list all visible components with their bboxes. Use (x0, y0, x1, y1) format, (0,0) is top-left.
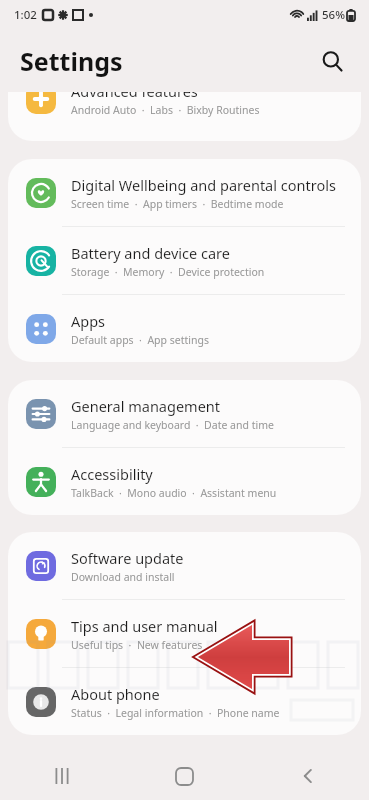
staticText: About phone (71, 684, 160, 704)
staticText: Download and install (71, 570, 175, 584)
button[interactable]: Search (315, 44, 349, 78)
staticText: Useful tips · New features (71, 638, 203, 652)
staticText: Advanced features (71, 92, 198, 101)
staticText: Default apps · App settings (71, 333, 209, 347)
staticText: 56% (322, 7, 345, 23)
staticText: Android Auto · Labs · Bixby Routines (71, 103, 260, 117)
staticText: Language and keyboard · Date and time (71, 418, 274, 432)
button[interactable]: Home (123, 752, 246, 800)
staticText: Software update (71, 548, 184, 568)
button[interactable]: Apps (8, 295, 361, 362)
staticText: Apps (71, 311, 106, 331)
staticText: TalkBack · Mono audio · Assistant menu (71, 486, 277, 500)
button[interactable]: Tips and user manual (8, 600, 361, 667)
button[interactable]: Recents (0, 752, 123, 800)
button[interactable]: General management (8, 380, 361, 447)
staticText: Battery and device care (71, 243, 230, 263)
button[interactable]: Software update (8, 532, 361, 599)
staticText: Accessibility (71, 464, 153, 484)
staticText: Tips and user manual (71, 616, 218, 636)
button[interactable]: Digital Wellbeing and parental controls (8, 159, 361, 226)
staticText: Storage · Memory · Device protection (71, 265, 265, 279)
button[interactable]: Battery and device care (8, 227, 361, 294)
staticText: Settings (20, 44, 123, 78)
staticText: Status · Legal information · Phone name (71, 706, 280, 720)
staticText: General management (71, 396, 221, 416)
staticText: 1:02 (14, 7, 37, 23)
staticText: Digital Wellbeing and parental controls (71, 175, 336, 195)
button[interactable]: About phone (8, 668, 361, 735)
staticText: Screen time · App timers · Bedtime mode (71, 197, 284, 211)
button[interactable]: Advanced features (8, 92, 361, 123)
button[interactable]: Back (246, 752, 369, 800)
button[interactable]: Accessibility (8, 448, 361, 515)
